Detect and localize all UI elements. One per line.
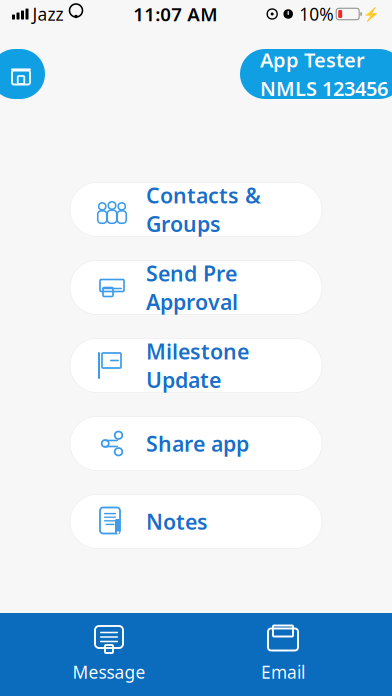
staticText: Notes [146, 507, 208, 536]
staticText: Message [72, 660, 145, 683]
staticText: Share app [146, 429, 249, 458]
button[interactable]: Contacts & Groups [70, 182, 322, 236]
staticText: App Tester [260, 46, 365, 73]
button[interactable]: Share app [70, 416, 322, 470]
button[interactable]: Send Pre Approval [70, 260, 322, 314]
staticText: Send Pre Approval [146, 259, 238, 316]
staticText: 10% [299, 2, 333, 25]
staticText: Jazz [32, 2, 63, 25]
button[interactable]: Milestone Update [70, 338, 322, 392]
staticText: 11:07 AM [133, 2, 217, 26]
staticText: Milestone Update [146, 337, 249, 394]
button[interactable]: Home [0, 49, 45, 99]
button[interactable]: App Tester [240, 49, 392, 99]
button[interactable]: Email [218, 619, 348, 689]
button[interactable]: Notes [70, 494, 322, 548]
staticText: NMLS 123456 [260, 75, 388, 102]
staticText: Email [261, 660, 305, 683]
staticText: Contacts & Groups [146, 181, 261, 238]
staticText: ⚡ [363, 6, 380, 22]
button[interactable]: Message [44, 619, 174, 689]
